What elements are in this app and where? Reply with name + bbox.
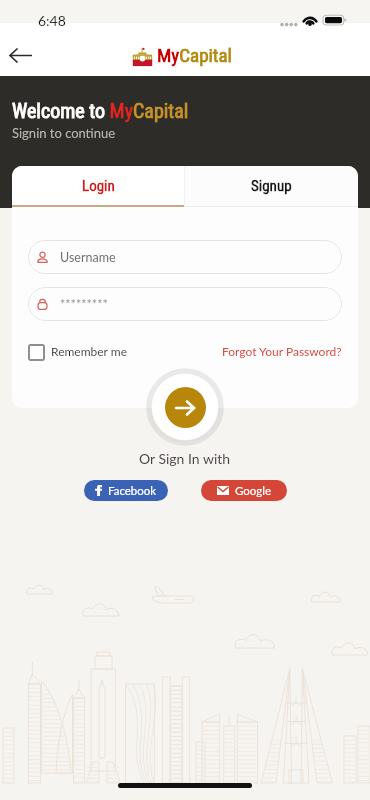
staticText: Welcome to MyCapital (12, 99, 189, 122)
button[interactable]: Back (5, 40, 35, 70)
staticText: Username (60, 250, 116, 265)
button[interactable]: Google (201, 480, 287, 501)
staticText: Signin to continue (12, 125, 116, 141)
button[interactable]: Login (12, 166, 184, 207)
staticText: Signup (251, 177, 292, 195)
button[interactable]: Signup (185, 166, 358, 207)
staticText: Login (82, 177, 115, 195)
staticText: Or Sign In with (139, 450, 231, 467)
button[interactable]: Sign in (165, 387, 206, 428)
staticText: Google (235, 484, 272, 498)
staticText: Facebook (108, 484, 157, 498)
button[interactable]: Facebook (84, 480, 168, 501)
button[interactable]: ********* (28, 287, 342, 321)
button[interactable]: Username (28, 240, 342, 274)
staticText: MyCapital (157, 44, 232, 66)
staticText: 6:48 (38, 12, 66, 29)
button[interactable]: Remember me (28, 344, 127, 361)
button[interactable]: Forgot Your Password? (222, 346, 342, 360)
staticText: ********* (60, 297, 108, 312)
staticText: Forgot Your Password? (222, 344, 342, 358)
staticText: Remember me (51, 344, 127, 358)
